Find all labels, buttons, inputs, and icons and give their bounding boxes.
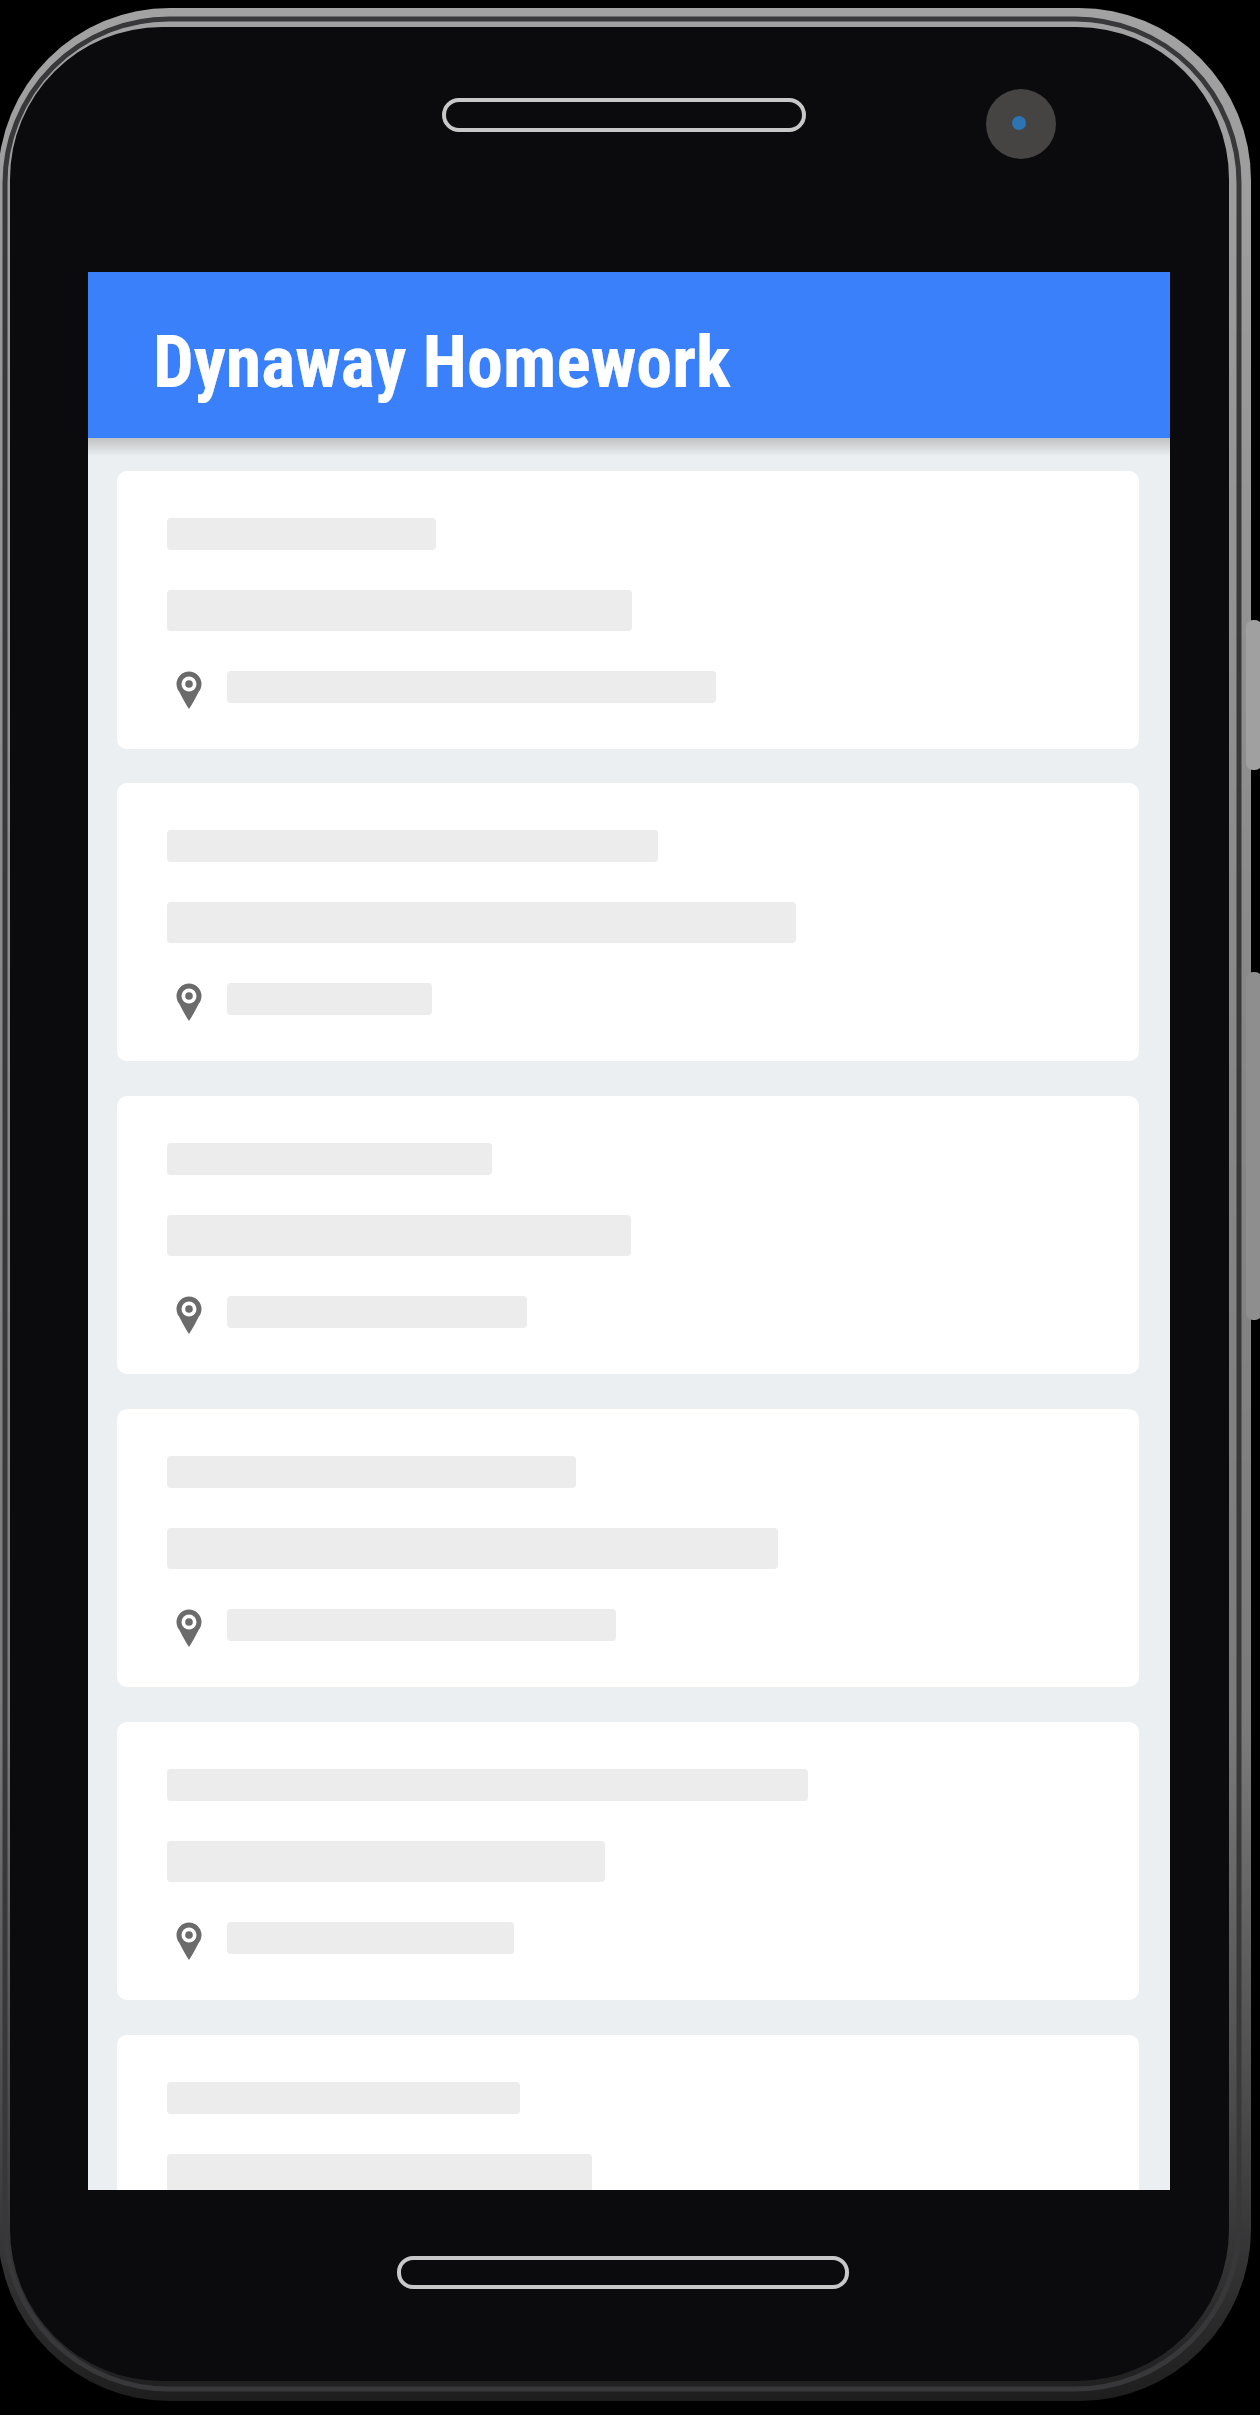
button[interactable]: [117, 2035, 1139, 2190]
button[interactable]: [117, 1096, 1139, 1374]
button[interactable]: [117, 1722, 1139, 2000]
button[interactable]: [117, 471, 1139, 749]
button[interactable]: [117, 783, 1139, 1061]
button[interactable]: [117, 1409, 1139, 1687]
staticText: Dynaway Homework: [153, 320, 731, 404]
